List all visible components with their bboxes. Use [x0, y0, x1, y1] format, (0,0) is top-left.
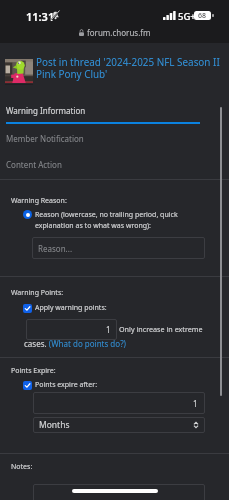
staticText: Only increase in extreme	[119, 324, 203, 334]
staticText: Warning Information	[6, 105, 86, 116]
staticText: Notes:	[11, 462, 33, 472]
staticText: Points expire after:	[35, 380, 98, 390]
button[interactable]: Reason...	[32, 237, 205, 259]
staticText: Warning Points:	[11, 288, 64, 298]
staticText: 5G+	[178, 10, 196, 23]
staticText: 11:31	[26, 9, 55, 24]
staticText: Member Notification	[6, 133, 84, 144]
staticText: Months	[39, 419, 70, 431]
staticText: 68	[198, 11, 207, 20]
button[interactable]: cases. (What do points do?)	[24, 338, 127, 349]
button[interactable]: Post in thread '2024-2025 NFL Season II …	[36, 55, 222, 81]
button[interactable]	[33, 484, 205, 500]
staticText: forum.chorus.fm	[87, 27, 151, 38]
button[interactable]: Content Action	[0, 155, 229, 177]
staticText: Content Action	[6, 159, 62, 170]
button[interactable]: forum.chorus.fm	[79, 27, 151, 38]
staticText: Apply warning points:	[35, 303, 107, 313]
button[interactable]: Warning Information	[0, 101, 229, 122]
staticText: Reason...	[38, 243, 73, 254]
button[interactable]: Apply warning points:	[23, 303, 107, 313]
button[interactable]: 1	[26, 319, 117, 340]
button[interactable]: Months	[33, 417, 205, 433]
button[interactable]: Reason (lowercase, no trailing period, q…	[23, 210, 205, 230]
button[interactable]: Points expire after:	[23, 380, 98, 390]
staticText: 1	[193, 398, 198, 409]
staticText: Points Expire:	[11, 366, 56, 376]
button[interactable]: Member Notification	[0, 129, 229, 151]
other: Silent mode	[51, 10, 60, 20]
staticText: Warning Reason:	[11, 196, 67, 206]
staticText: 1	[106, 324, 111, 335]
staticText: Reason (lowercase, no trailing period, q…	[35, 210, 205, 230]
button[interactable]: 1	[33, 392, 205, 414]
